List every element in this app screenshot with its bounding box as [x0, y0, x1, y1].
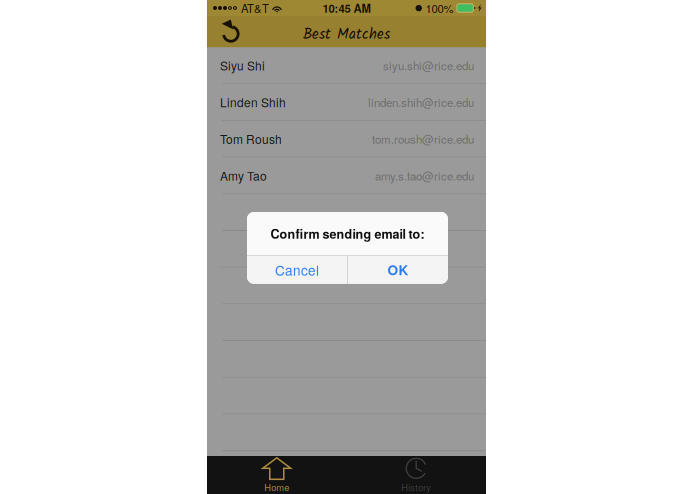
- staticText: 10:45 AM: [322, 0, 370, 16]
- staticText: History: [401, 480, 431, 494]
- staticText: Confirm sending email to:: [270, 224, 424, 242]
- button[interactable]: Cancel: [247, 256, 347, 284]
- button[interactable]: Tom Roush: [207, 121, 486, 158]
- staticText: 100%: [425, 0, 453, 16]
- staticText: Home: [264, 480, 289, 494]
- staticText: Tom Roush: [220, 130, 282, 147]
- staticText: Siyu Shi: [220, 57, 265, 74]
- staticText: linden.shih@rice.edu: [368, 94, 474, 110]
- staticText: Best Matches: [303, 23, 390, 46]
- staticText: siyu.shi@rice.edu: [383, 57, 474, 73]
- staticText: Linden Shih: [220, 93, 286, 111]
- staticText: amy.s.tao@rice.edu: [375, 167, 474, 184]
- button[interactable]: Amy Tao: [207, 158, 486, 194]
- staticText: tom.roush@rice.edu: [372, 130, 474, 147]
- staticText: Cancel: [275, 260, 319, 280]
- button[interactable]: Back: [207, 16, 255, 47]
- staticText: Amy Tao: [220, 167, 267, 184]
- staticText: OK: [387, 260, 408, 280]
- button[interactable]: History: [346, 456, 486, 494]
- button[interactable]: Linden Shih: [207, 84, 486, 121]
- staticText: AT&T: [241, 0, 269, 16]
- button[interactable]: OK: [348, 256, 448, 284]
- button[interactable]: Home: [207, 456, 346, 494]
- button[interactable]: Siyu Shi: [207, 47, 486, 84]
